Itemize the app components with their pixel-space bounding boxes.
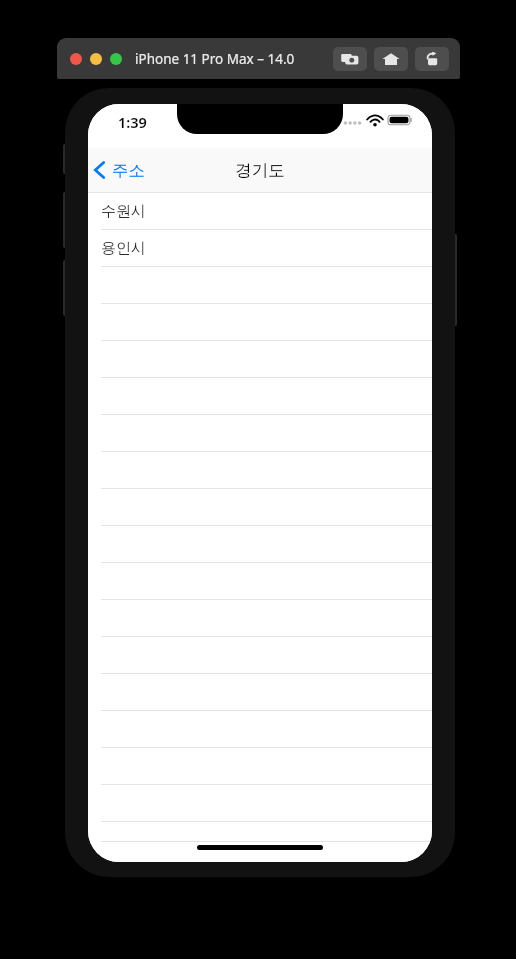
staticText: 용인시 xyxy=(101,239,146,258)
staticText: 경기도 xyxy=(235,160,285,181)
staticText: 1:39 xyxy=(118,112,147,132)
staticText: iPhone 11 Pro Max – 14.0 xyxy=(135,50,295,68)
staticText: 주소 xyxy=(112,160,145,181)
staticText: 수원시 xyxy=(101,202,146,221)
button[interactable]: 주소 xyxy=(92,148,145,192)
button[interactable]: Minimize xyxy=(90,53,102,65)
button[interactable]: Screenshot xyxy=(333,47,367,71)
button[interactable]: Home xyxy=(374,47,408,71)
button[interactable]: Zoom xyxy=(110,53,122,65)
button[interactable]: Share xyxy=(415,47,449,71)
button[interactable]: Close xyxy=(70,53,82,65)
button[interactable]: 용인시 xyxy=(88,230,432,267)
button[interactable]: 수원시 xyxy=(88,193,432,230)
